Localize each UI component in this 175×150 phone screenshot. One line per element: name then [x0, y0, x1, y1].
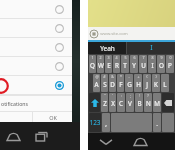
staticText: G	[127, 80, 132, 89]
button[interactable]: -	[125, 74, 133, 92]
staticText: P	[168, 61, 172, 70]
staticText: .	[156, 119, 158, 128]
staticText: ,	[105, 119, 107, 128]
button[interactable]: 9	[157, 55, 165, 73]
button[interactable]	[0, 0, 72, 19]
staticText: Q	[90, 61, 95, 70]
staticText: OK	[49, 114, 57, 121]
button[interactable]: Home	[123, 133, 158, 150]
staticText: M	[154, 99, 160, 108]
button[interactable]: ,	[102, 113, 110, 132]
staticText: W	[98, 61, 104, 70]
staticText: "	[104, 93, 106, 98]
button[interactable]: .	[153, 113, 161, 132]
button[interactable]: "	[101, 93, 108, 112]
button[interactable]	[0, 76, 72, 95]
button[interactable]: 5	[121, 55, 129, 73]
button[interactable]: 8	[148, 55, 156, 73]
staticText: E	[107, 61, 111, 70]
staticText: Y	[132, 61, 136, 70]
button[interactable]: 6	[130, 55, 138, 73]
staticText: 5	[124, 55, 127, 60]
staticText: 1	[91, 55, 94, 60]
staticText: :	[121, 93, 122, 98]
staticText: *	[120, 74, 122, 79]
staticText: D	[110, 80, 115, 89]
button[interactable]: 7	[139, 55, 147, 73]
staticText: X	[111, 99, 115, 108]
button[interactable]: ?	[144, 93, 152, 112]
button[interactable]: 1	[89, 55, 96, 73]
button[interactable]: '	[109, 93, 116, 112]
button[interactable]: 0	[166, 55, 174, 73]
staticText: V	[128, 99, 132, 108]
staticText: Yeah	[100, 44, 115, 53]
staticText: +	[137, 74, 140, 79]
button[interactable]: 4	[113, 55, 120, 73]
staticText: T	[123, 61, 127, 70]
staticText: otifications	[1, 100, 28, 107]
staticText: '	[112, 93, 113, 98]
staticText: (	[146, 74, 148, 79]
button[interactable]: Recent apps	[27, 122, 55, 150]
button[interactable]	[0, 38, 72, 57]
button[interactable]: +	[134, 74, 142, 92]
button[interactable]: Hide keyboard	[88, 133, 123, 150]
staticText: A	[94, 80, 99, 89]
button[interactable]: ;	[126, 93, 134, 112]
staticText: I	[150, 43, 153, 53]
button[interactable]: OK	[33, 112, 72, 122]
button[interactable]: @	[93, 74, 100, 92]
staticText: 0	[169, 55, 172, 60]
staticText: @	[95, 74, 99, 79]
button[interactable]: otifications	[0, 96, 72, 111]
button[interactable]: &	[109, 74, 116, 92]
staticText: 9	[160, 55, 163, 60]
button[interactable]: !	[135, 93, 143, 112]
button[interactable]: Shift	[89, 93, 100, 112]
button[interactable]: M	[153, 93, 161, 112]
button[interactable]: 3	[105, 55, 112, 73]
staticText: 123	[89, 118, 101, 127]
button[interactable]: #	[101, 74, 108, 92]
button[interactable]	[0, 19, 72, 38]
button[interactable]: L	[161, 74, 169, 92]
staticText: O	[159, 61, 164, 70]
staticText: &	[111, 74, 114, 79]
staticText: R	[115, 61, 119, 70]
staticText: )	[155, 74, 157, 79]
button[interactable]: Yeah	[88, 42, 126, 54]
button[interactable]: (	[143, 74, 151, 92]
button[interactable]: Home	[0, 122, 27, 150]
staticText: Z	[103, 99, 107, 108]
button[interactable]: 2	[97, 55, 104, 73]
staticText: !	[139, 93, 140, 98]
staticText: S	[103, 80, 107, 89]
button[interactable]: I	[127, 42, 175, 54]
button[interactable]: 123	[89, 113, 101, 132]
staticText: 6	[133, 55, 136, 60]
staticText: ?	[147, 93, 149, 98]
staticText: K	[154, 80, 158, 89]
staticText: #	[103, 74, 106, 79]
staticText: www.site.com	[100, 31, 128, 37]
staticText: 7	[142, 55, 145, 60]
staticText: ;	[130, 93, 131, 98]
staticText: 4	[115, 55, 118, 60]
staticText: U	[141, 61, 146, 70]
staticText: -	[128, 74, 130, 79]
button[interactable]: :	[117, 93, 125, 112]
button[interactable]: www.site.com	[88, 27, 175, 40]
staticText: L	[163, 80, 167, 89]
staticText: J	[146, 80, 148, 89]
button[interactable]: *	[117, 74, 124, 92]
staticText: B	[137, 99, 142, 108]
button[interactable]	[0, 57, 72, 76]
staticText: H	[136, 80, 141, 89]
button[interactable]: Backspace	[162, 93, 174, 112]
button[interactable]: )	[152, 74, 160, 92]
staticText: I	[151, 61, 154, 70]
